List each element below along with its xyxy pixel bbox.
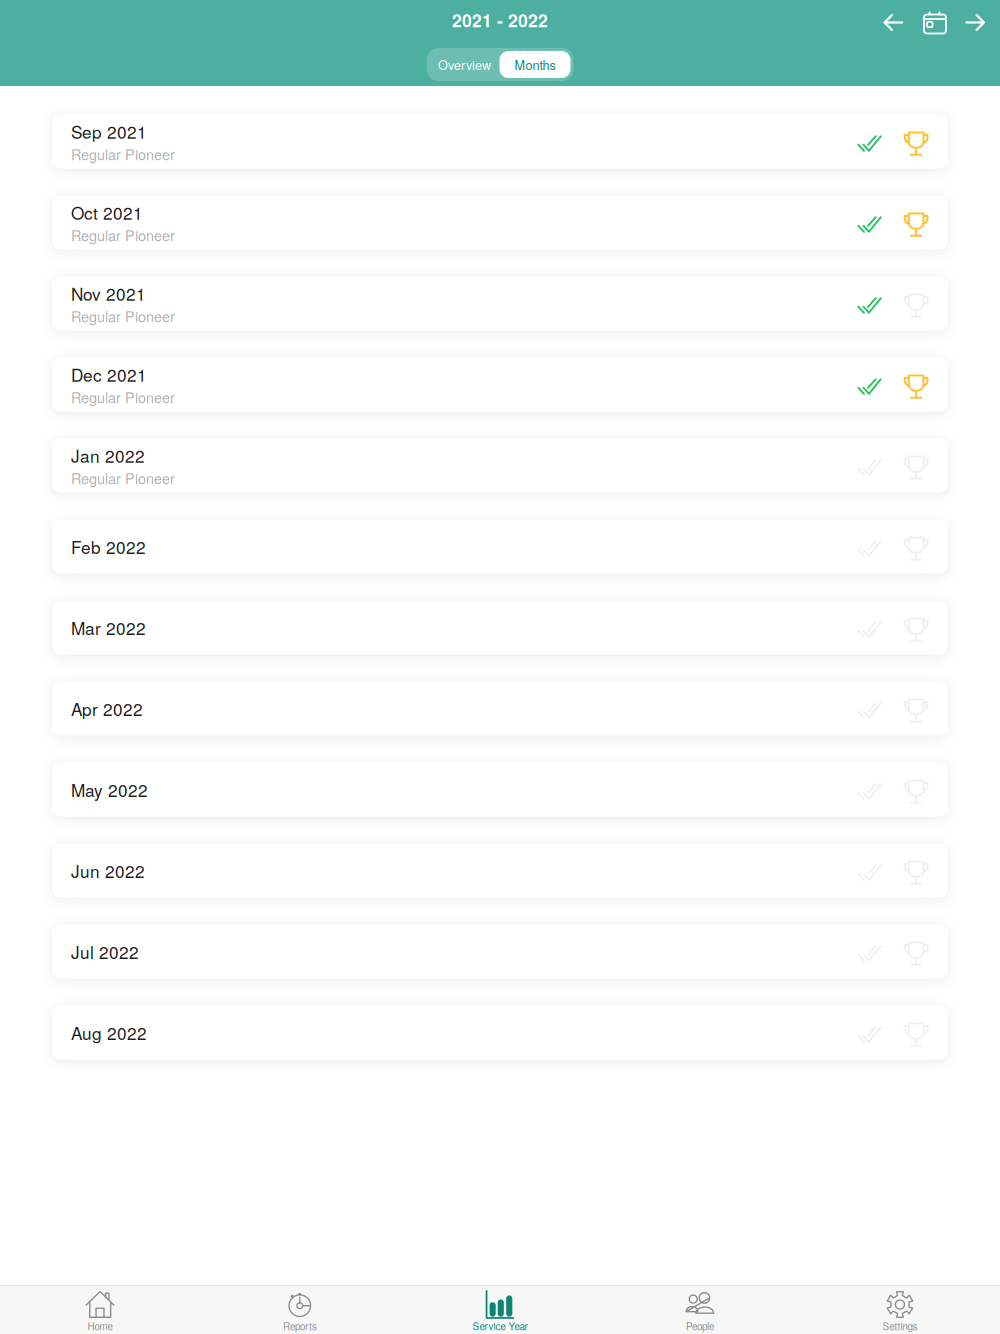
staticText: May 2022 [71, 777, 148, 802]
button[interactable]: Jun 2022 [52, 844, 948, 898]
staticText: Regular Pioneer [71, 387, 175, 407]
staticText: Aug 2022 [71, 1020, 147, 1045]
button[interactable]: Mar 2022 [52, 601, 948, 655]
button[interactable]: Jul 2022 [52, 925, 948, 979]
button[interactable]: Months [499, 51, 570, 78]
button[interactable]: Jan 2022 [52, 439, 948, 493]
button[interactable]: Overview [429, 51, 499, 78]
button[interactable]: Settings [800, 1286, 1000, 1334]
staticText: Jun 2022 [71, 858, 145, 883]
staticText: Regular Pioneer [71, 306, 175, 326]
button[interactable]: Home [0, 1286, 200, 1334]
staticText: Jan 2022 [71, 443, 145, 468]
staticText: Regular Pioneer [71, 468, 175, 488]
staticText: 2021 - 2022 [452, 7, 548, 33]
staticText: Jul 2022 [71, 939, 139, 964]
staticText: Home [87, 1319, 112, 1333]
staticText: Feb 2022 [71, 534, 146, 559]
button[interactable]: Service Year [400, 1286, 600, 1334]
button[interactable]: Sep 2021 [52, 115, 948, 169]
staticText: Settings [882, 1319, 917, 1333]
button[interactable]: Dec 2021 [52, 358, 948, 412]
staticText: Nov 2021 [71, 281, 146, 306]
staticText: Mar 2022 [71, 615, 146, 640]
button[interactable]: Aug 2022 [52, 1006, 948, 1060]
staticText: Sep 2021 [71, 119, 147, 144]
staticText: Regular Pioneer [71, 144, 175, 164]
staticText: Oct 2021 [71, 200, 143, 225]
button[interactable]: Next service year [966, 12, 985, 32]
staticText: Months [514, 55, 555, 73]
button[interactable]: Oct 2021 [52, 196, 948, 250]
button[interactable]: Feb 2022 [52, 520, 948, 574]
button[interactable]: Nov 2021 [52, 277, 948, 331]
staticText: Reports [283, 1319, 317, 1333]
button[interactable]: People [600, 1286, 800, 1334]
button[interactable]: Apr 2022 [52, 682, 948, 736]
button[interactable]: Previous service year [883, 12, 902, 32]
button[interactable]: May 2022 [52, 763, 948, 817]
staticText: People [686, 1319, 714, 1333]
button[interactable]: Choose service year [923, 11, 947, 33]
staticText: Regular Pioneer [71, 225, 175, 245]
staticText: Overview [438, 55, 491, 73]
staticText: Dec 2021 [71, 362, 147, 387]
staticText: Service Year [472, 1319, 527, 1333]
staticText: Apr 2022 [71, 696, 143, 721]
button[interactable]: Reports [200, 1286, 400, 1334]
